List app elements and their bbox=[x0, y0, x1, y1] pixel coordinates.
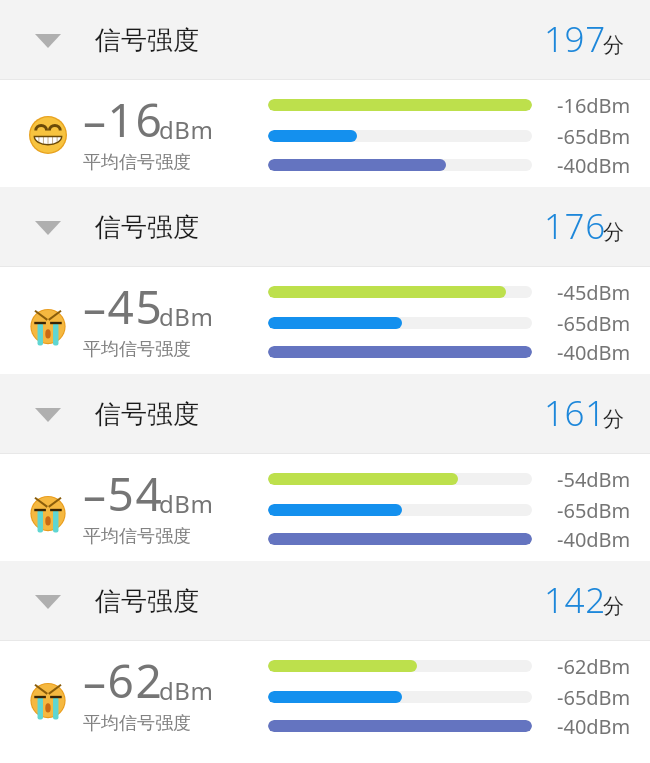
staticText: 平均信号强度 bbox=[83, 338, 191, 361]
staticText: –54 bbox=[83, 462, 164, 525]
staticText: dBm bbox=[159, 487, 214, 520]
staticText: -16dBm bbox=[557, 92, 631, 119]
staticText: 197 bbox=[544, 15, 606, 63]
button[interactable]: Collapse section bbox=[0, 374, 650, 454]
button[interactable]: Poor signal bbox=[0, 454, 650, 561]
staticText: -54dBm bbox=[557, 466, 631, 493]
staticText: 161 bbox=[544, 389, 606, 437]
button[interactable]: Collapse section bbox=[0, 0, 650, 80]
staticText: 分 bbox=[603, 593, 624, 619]
staticText: -40dBm bbox=[557, 526, 631, 553]
staticText: 信号强度 bbox=[95, 211, 199, 244]
other: Poor signal bbox=[26, 490, 70, 534]
staticText: 176 bbox=[544, 202, 606, 250]
other: Good signal bbox=[26, 113, 70, 157]
button[interactable]: Collapse section bbox=[24, 578, 72, 624]
button[interactable]: Collapse section bbox=[24, 391, 72, 437]
staticText: -40dBm bbox=[557, 713, 631, 740]
staticText: dBm bbox=[159, 300, 214, 333]
staticText: 信号强度 bbox=[95, 24, 199, 57]
other: Poor signal bbox=[26, 303, 70, 347]
staticText: 分 bbox=[603, 406, 624, 432]
staticText: -65dBm bbox=[557, 684, 631, 711]
staticText: –45 bbox=[83, 275, 164, 338]
staticText: -65dBm bbox=[557, 123, 631, 150]
staticText: 平均信号强度 bbox=[83, 712, 191, 735]
staticText: -45dBm bbox=[557, 279, 631, 306]
button[interactable]: Collapse section bbox=[0, 561, 650, 641]
staticText: 分 bbox=[603, 32, 624, 58]
button[interactable]: Collapse section bbox=[24, 17, 72, 63]
staticText: 平均信号强度 bbox=[83, 525, 191, 548]
staticText: –62 bbox=[83, 649, 164, 712]
staticText: 142 bbox=[544, 576, 606, 624]
staticText: 信号强度 bbox=[95, 398, 199, 431]
button[interactable]: Poor signal bbox=[0, 267, 650, 374]
staticText: -65dBm bbox=[557, 497, 631, 524]
button[interactable]: Collapse section bbox=[0, 187, 650, 267]
staticText: -65dBm bbox=[557, 310, 631, 337]
staticText: -40dBm bbox=[557, 152, 631, 179]
staticText: dBm bbox=[159, 674, 214, 707]
staticText: –16 bbox=[83, 88, 164, 151]
staticText: 平均信号强度 bbox=[83, 151, 191, 174]
button[interactable]: Collapse section bbox=[24, 204, 72, 250]
staticText: -62dBm bbox=[557, 653, 631, 680]
other: Poor signal bbox=[26, 677, 70, 721]
staticText: dBm bbox=[159, 113, 214, 146]
staticText: 分 bbox=[603, 219, 624, 245]
staticText: 信号强度 bbox=[95, 585, 199, 618]
staticText: -40dBm bbox=[557, 339, 631, 366]
button[interactable]: Poor signal bbox=[0, 641, 650, 763]
button[interactable]: Good signal bbox=[0, 80, 650, 187]
